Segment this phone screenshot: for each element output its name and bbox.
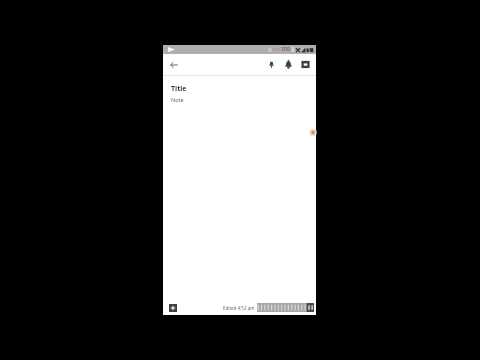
staticText: 100 (281, 46, 290, 53)
button[interactable]: Add (168, 303, 177, 312)
staticText: Title (171, 84, 187, 94)
button[interactable]: Archive (297, 56, 314, 73)
staticText: Note (171, 96, 184, 103)
staticText: Edited 4:52 am (223, 305, 255, 311)
button[interactable]: Reminder (280, 56, 297, 73)
button[interactable]: Back (163, 54, 184, 75)
button[interactable]: Pin (263, 56, 280, 73)
